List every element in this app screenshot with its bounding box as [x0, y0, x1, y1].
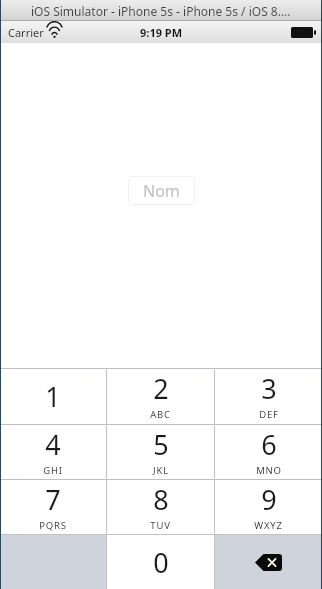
button[interactable]: Delete [215, 535, 322, 589]
button[interactable]: 1 [0, 369, 106, 424]
staticText: 9:19 PM [140, 25, 183, 40]
staticText: Nom [143, 180, 180, 202]
button[interactable]: Nom [128, 176, 195, 205]
staticText: 2 [153, 370, 169, 407]
staticText: 5 [153, 426, 169, 463]
button[interactable]: 7 [0, 480, 106, 534]
staticText: 9 [261, 481, 277, 518]
button[interactable]: 0 [107, 535, 214, 589]
button[interactable]: 9 [215, 480, 322, 534]
staticText: 3 [261, 370, 277, 407]
staticText: GHI [43, 464, 63, 477]
button[interactable]: 2 [107, 369, 214, 424]
button[interactable]: 3 [215, 369, 322, 424]
staticText: 7 [45, 481, 61, 518]
staticText: 0 [153, 544, 169, 581]
staticText: iOS Simulator - iPhone 5s - iPhone 5s / … [31, 3, 291, 19]
button[interactable]: 6 [215, 425, 322, 479]
staticText: WXYZ [254, 519, 283, 532]
staticText: Carrier [8, 25, 44, 40]
button[interactable]: 4 [0, 425, 106, 479]
staticText: 4 [45, 426, 61, 463]
staticText: ABC [150, 408, 171, 421]
staticText: PQRS [39, 519, 67, 532]
staticText: 1 [45, 378, 61, 415]
staticText: JKL [153, 464, 169, 477]
button[interactable]: 8 [107, 480, 214, 534]
button[interactable]: 5 [107, 425, 214, 479]
button[interactable]: Blank [0, 535, 106, 589]
staticText: 6 [261, 426, 277, 463]
staticText: MNO [256, 464, 282, 477]
staticText: 8 [153, 481, 169, 518]
staticText: TUV [150, 519, 171, 532]
staticText: DEF [259, 408, 279, 421]
